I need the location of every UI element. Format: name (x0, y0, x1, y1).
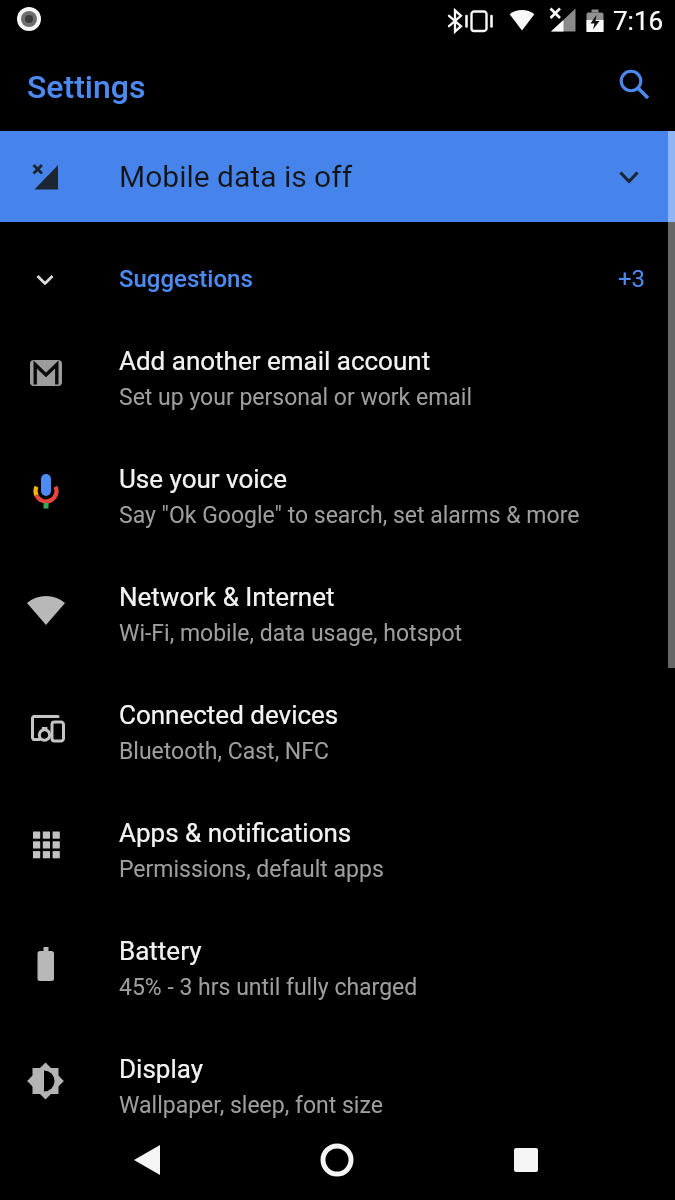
button[interactable] (120, 1132, 176, 1188)
staticText: +3 (618, 265, 646, 293)
button[interactable] (498, 1132, 554, 1188)
button[interactable]: Network & Internet (0, 550, 675, 668)
staticText: Bluetooth, Cast, NFC (119, 738, 329, 765)
staticText: Network & Internet (119, 582, 335, 612)
staticText: Say "Ok Google" to search, set alarms & … (119, 502, 580, 529)
staticText: Connected devices (119, 700, 339, 730)
button[interactable]: Connected devices (0, 668, 675, 786)
button[interactable]: Add another email account (0, 314, 675, 432)
button[interactable]: Suggestions (0, 222, 675, 314)
button[interactable]: Apps & notifications (0, 786, 675, 904)
staticText: Wi-Fi, mobile, data usage, hotspot (119, 620, 463, 647)
staticText: Settings (27, 68, 146, 106)
staticText: Permissions, default apps (119, 856, 384, 883)
staticText: Add another email account (119, 346, 431, 376)
staticText: 7:16 (613, 6, 664, 36)
staticText: Apps & notifications (119, 818, 352, 848)
staticText: Suggestions (119, 265, 253, 293)
staticText: Set up your personal or work email (119, 384, 473, 411)
staticText: Battery (119, 936, 202, 966)
button[interactable] (605, 59, 661, 115)
button[interactable]: Display (0, 1022, 675, 1140)
button[interactable] (309, 1132, 365, 1188)
button[interactable]: Mobile data is off (0, 131, 675, 222)
staticText: Mobile data is off (119, 159, 353, 194)
staticText: Use your voice (119, 464, 287, 494)
staticText: 45% - 3 hrs until fully charged (119, 974, 418, 1001)
button[interactable]: Battery (0, 904, 675, 1022)
button[interactable]: Use your voice (0, 432, 675, 550)
staticText: Display (119, 1054, 203, 1084)
staticText: Wallpaper, sleep, font size (119, 1092, 383, 1119)
